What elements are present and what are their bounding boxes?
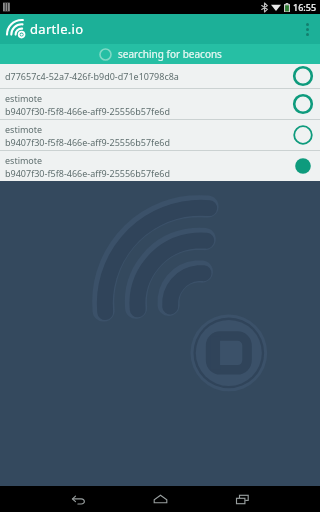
staticText: b9407f30-f5f8-466e-aff9-25556b57fe6d (5, 105, 170, 117)
button[interactable]: Recent apps (211, 486, 273, 512)
staticText: 16:55 (293, 1, 317, 13)
staticText: estimote (5, 154, 43, 166)
button[interactable]: Back (47, 486, 109, 512)
staticText: b9407f30-f5f8-466e-aff9-25556b57fe6d (5, 167, 170, 179)
button[interactable]: d77657c4-52a7-426f-b9d0-d71e10798c8a (0, 64, 320, 88)
staticText: estimote (5, 92, 43, 104)
button[interactable]: Select beacon (286, 64, 320, 88)
staticText: b9407f30-f5f8-466e-aff9-25556b57fe6d (5, 136, 170, 148)
button[interactable]: searching for beacons (0, 44, 320, 64)
button[interactable]: More options (294, 14, 320, 44)
button[interactable]: estimote (0, 151, 320, 181)
button[interactable]: Home (129, 486, 191, 512)
staticText: d77657c4-52a7-426f-b9d0-d71e10798c8a (5, 70, 179, 82)
button[interactable]: Select beacon (286, 120, 320, 150)
button[interactable]: estimote (0, 89, 320, 119)
button[interactable]: Select beacon (286, 89, 320, 119)
button[interactable]: estimote (0, 120, 320, 150)
staticText: dartle.io (30, 20, 84, 38)
button[interactable]: Select beacon (286, 151, 320, 181)
staticText: searching for beacons (118, 47, 222, 61)
staticText: estimote (5, 123, 43, 135)
